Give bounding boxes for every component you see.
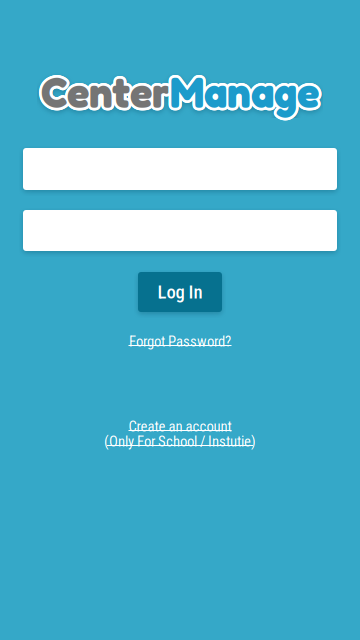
staticText: Manage <box>167 65 316 117</box>
staticText: Manage <box>169 64 318 115</box>
staticText: Manage <box>169 69 318 120</box>
staticText: Center <box>44 66 173 118</box>
staticText: Manage <box>173 67 322 119</box>
staticText: Forgot Password? <box>129 333 231 350</box>
staticText: Manage <box>171 69 320 120</box>
staticText: Center <box>39 68 168 120</box>
staticText: Manage <box>168 68 317 120</box>
staticText: Center <box>38 66 167 118</box>
staticText: Manage <box>168 64 317 116</box>
staticText: Manage <box>170 63 319 115</box>
staticText: Log In <box>157 281 202 303</box>
staticText: Manage <box>173 65 322 117</box>
staticText: Manage <box>172 68 321 119</box>
staticText: Manage <box>170 66 319 118</box>
staticText: Center <box>41 69 170 120</box>
staticText: Center <box>43 68 172 120</box>
staticText: Center <box>39 68 168 119</box>
staticText: Manage <box>167 67 316 119</box>
staticText: Center <box>39 65 168 116</box>
staticText: Manage <box>172 64 321 116</box>
staticText: Manage <box>171 64 320 115</box>
staticText: Center <box>42 69 171 120</box>
staticText: Manage <box>172 68 321 120</box>
button[interactable]: Forgot Password? <box>128 334 231 349</box>
staticText: Center <box>42 64 171 115</box>
staticText: Center <box>44 67 173 119</box>
staticText: Manage <box>170 69 319 120</box>
staticText: Manage <box>172 65 321 116</box>
staticText: Manage <box>167 66 316 118</box>
staticText: Center <box>39 64 168 116</box>
staticText: Center <box>44 65 173 117</box>
staticText: Center <box>41 66 170 118</box>
button[interactable]: Create an account <box>104 419 256 449</box>
staticText: Center <box>43 64 172 116</box>
staticText: Center <box>38 65 167 117</box>
staticText: Center <box>40 64 169 115</box>
staticText: (Only For School / Instutie) <box>104 433 256 450</box>
button[interactable]: Log In <box>138 272 222 312</box>
staticText: Center <box>43 65 172 116</box>
staticText: Manage <box>173 66 322 118</box>
staticText: Center <box>40 69 169 120</box>
staticText: Manage <box>168 68 317 119</box>
staticText: Center <box>41 63 170 115</box>
staticText: Center <box>43 68 172 119</box>
staticText: Create an account <box>128 418 231 435</box>
staticText: Center <box>38 67 167 119</box>
staticText: Manage <box>168 65 317 116</box>
